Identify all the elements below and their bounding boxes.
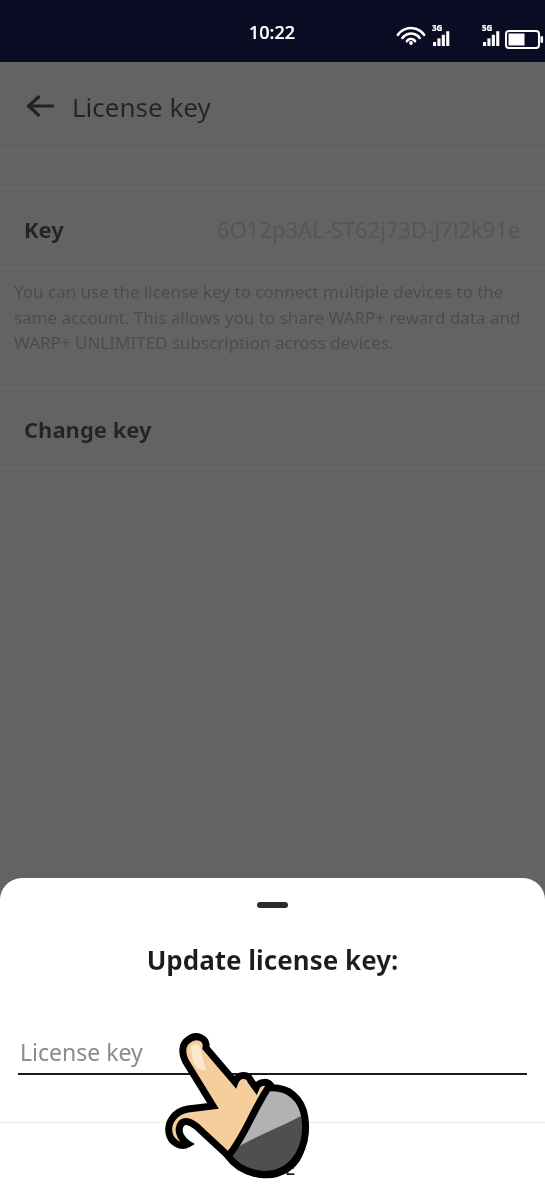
staticText: SAVE (249, 1154, 296, 1181)
button[interactable]: Key (0, 189, 545, 268)
staticText: 10:22 (249, 20, 296, 45)
button[interactable]: SAVE (0, 1140, 545, 1200)
staticText: Update license key: (0, 942, 545, 977)
staticText: You can use the license key to connect m… (14, 280, 531, 354)
staticText: License key (72, 89, 211, 124)
staticText: 3G (432, 22, 443, 33)
staticText: Key (24, 214, 64, 244)
staticText: Change key (24, 414, 152, 444)
button[interactable]: Change key (0, 389, 545, 468)
button[interactable]: Back (12, 78, 68, 134)
button[interactable]: License key (0, 1031, 545, 1081)
staticText: License key (20, 1036, 143, 1067)
staticText: 5G (482, 22, 493, 33)
staticText: 6O12p3AL-ST62j73D-J7l2k91e (217, 214, 521, 244)
